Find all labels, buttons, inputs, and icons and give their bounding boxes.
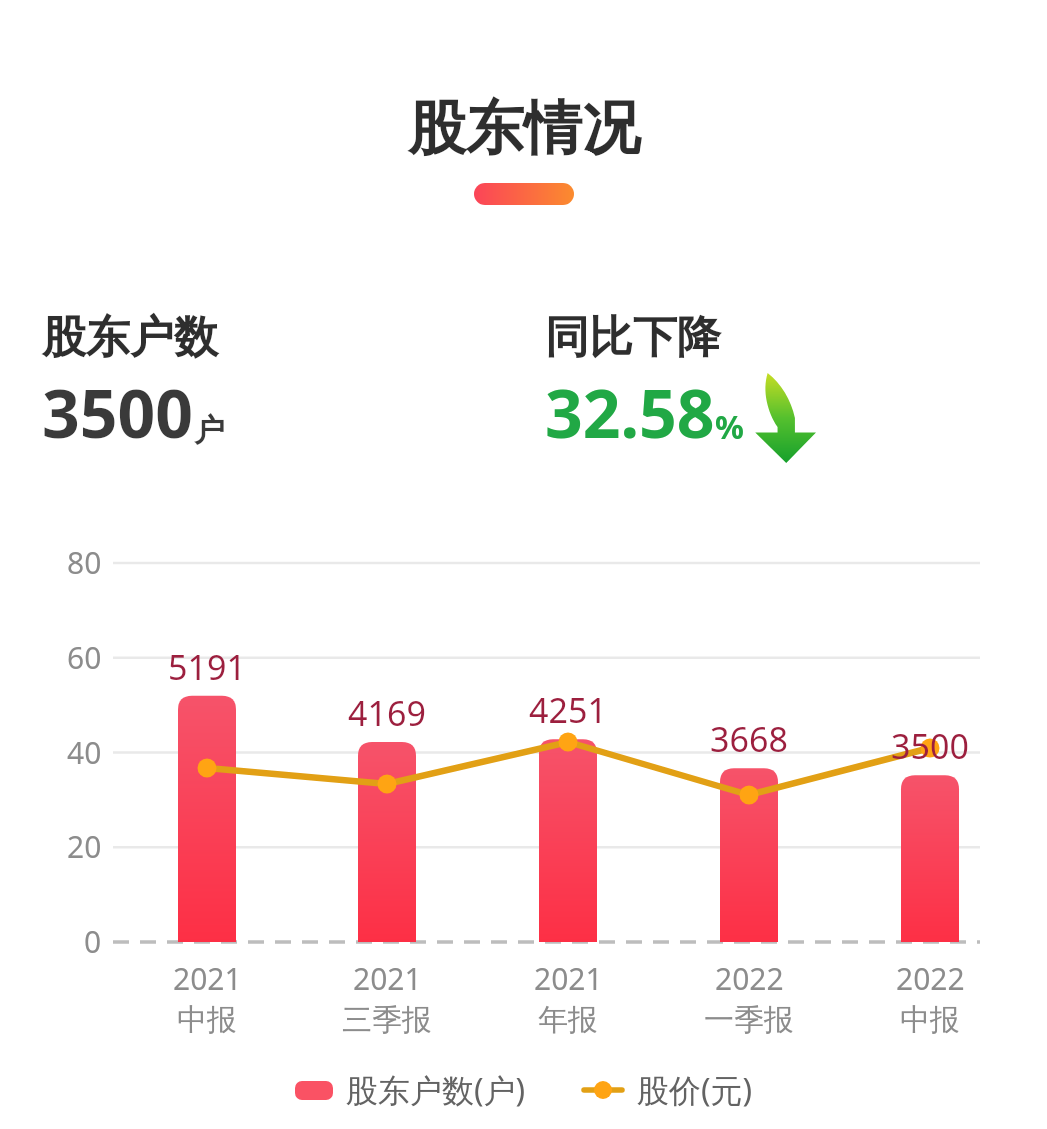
staticText: 同比下降 bbox=[545, 310, 721, 365]
staticText: 2021 bbox=[534, 958, 603, 999]
staticText: 2022 bbox=[715, 958, 784, 999]
staticText: 股东户数 bbox=[42, 310, 218, 365]
staticText: 2021 bbox=[353, 958, 422, 999]
button[interactable]: 2021 bbox=[488, 958, 648, 1039]
staticText: 3668 bbox=[710, 716, 788, 762]
button[interactable]: 股东户数(户) bbox=[291, 1068, 530, 1112]
staticText: 60 bbox=[67, 637, 102, 678]
staticText: % bbox=[715, 405, 744, 449]
button[interactable]: 2022 bbox=[850, 958, 1010, 1039]
button[interactable]: 股东户数 bbox=[0, 310, 545, 457]
staticText: 年报 bbox=[538, 1001, 598, 1039]
staticText: 3500 bbox=[42, 367, 194, 457]
button[interactable]: 2021 bbox=[307, 958, 467, 1039]
staticText: 中报 bbox=[177, 1001, 237, 1039]
button[interactable]: 股价(元) bbox=[578, 1068, 757, 1112]
button[interactable]: 同比下降 bbox=[545, 310, 1047, 457]
staticText: 5191 bbox=[168, 644, 246, 690]
staticText: 中报 bbox=[900, 1001, 960, 1039]
staticText: 3500 bbox=[891, 723, 969, 769]
staticText: 股价(元) bbox=[637, 1068, 753, 1112]
staticText: 2021 bbox=[173, 958, 242, 999]
staticText: 2022 bbox=[896, 958, 965, 999]
staticText: 一季报 bbox=[704, 1001, 794, 1039]
staticText: 40 bbox=[67, 732, 102, 773]
button[interactable]: 2021 bbox=[127, 958, 287, 1039]
staticText: 户 bbox=[194, 411, 225, 450]
other: 同比下降 bbox=[754, 373, 816, 463]
staticText: 20 bbox=[67, 826, 102, 867]
staticText: 股东情况 bbox=[408, 92, 640, 165]
staticText: 32.58 bbox=[545, 367, 715, 457]
button[interactable]: 2022 bbox=[669, 958, 829, 1039]
staticText: 4169 bbox=[348, 690, 426, 736]
staticText: 三季报 bbox=[342, 1001, 432, 1039]
staticText: 80 bbox=[67, 542, 102, 583]
staticText: 4251 bbox=[529, 687, 607, 733]
staticText: 股东户数(户) bbox=[346, 1068, 526, 1112]
staticText: 0 bbox=[84, 921, 102, 962]
